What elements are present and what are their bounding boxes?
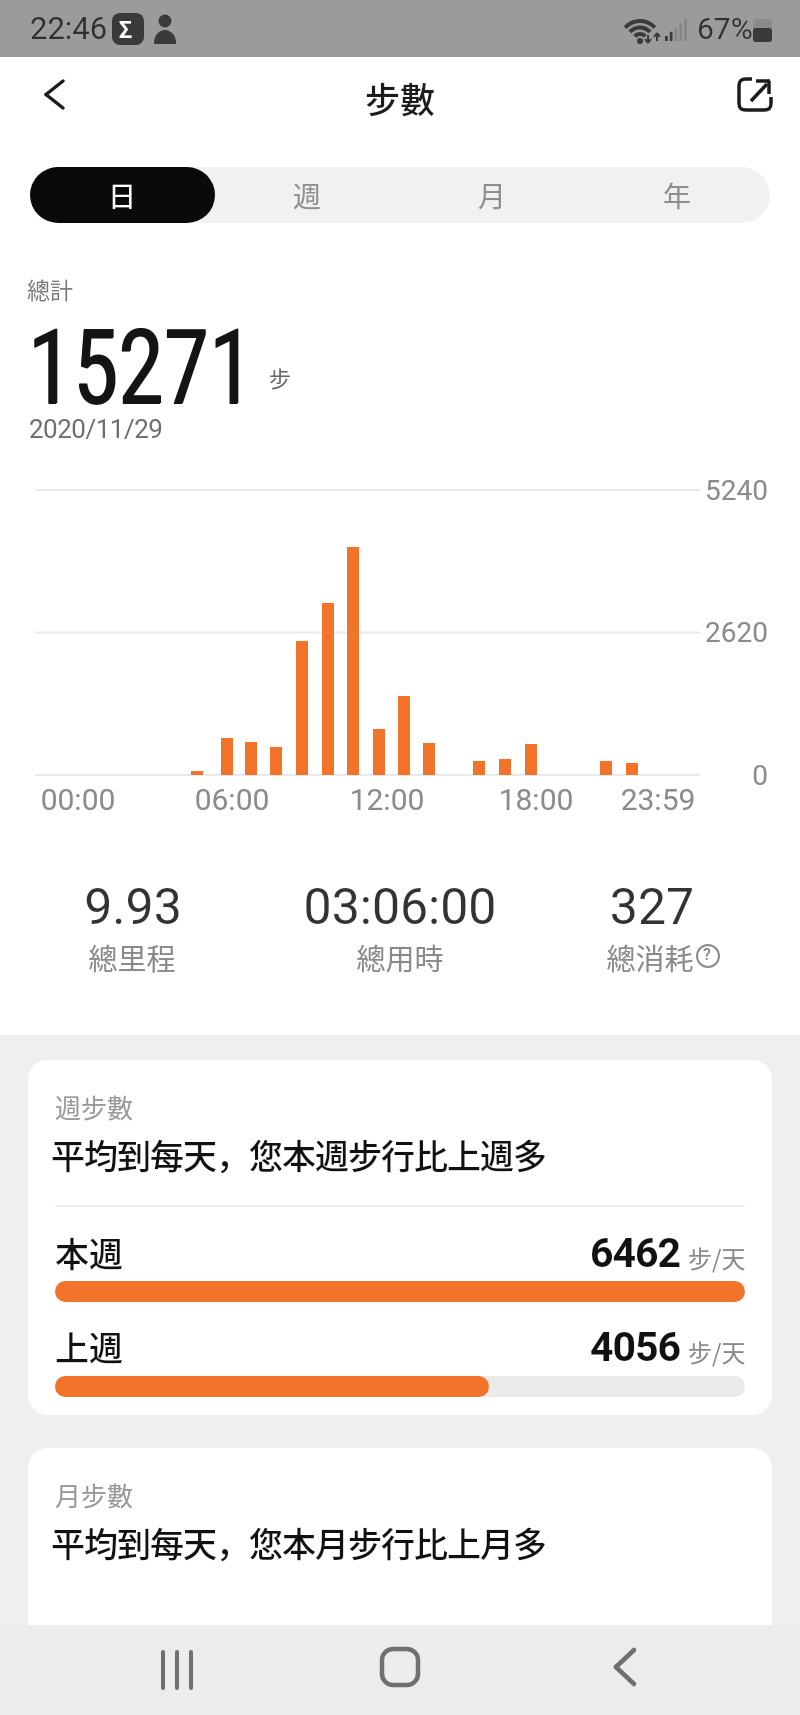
staticText: 週步數 (55, 1088, 134, 1126)
staticText: 年 (663, 175, 692, 216)
staticText: 本週 (55, 1228, 123, 1277)
staticText: 67% (697, 11, 753, 46)
button[interactable] (28, 70, 80, 122)
button[interactable] (28, 1448, 772, 1660)
staticText: 上週 (55, 1322, 123, 1371)
staticText: 步/天 (688, 1240, 746, 1275)
staticText: 4056 (422, 1323, 680, 1371)
staticText: 步數 (330, 72, 470, 123)
staticText: 5240 (690, 474, 768, 507)
button[interactable] (575, 1625, 675, 1715)
staticText: 22:46 (30, 10, 108, 46)
staticText: 03:06:00 (280, 878, 520, 937)
button[interactable]: ? (694, 942, 722, 970)
staticText: 總用時 (330, 936, 470, 978)
button[interactable]: 週 (215, 167, 400, 223)
staticText: 15271 (28, 307, 255, 429)
staticText: 6462 (422, 1229, 680, 1277)
staticText: 2020/11/29 (29, 414, 163, 444)
button[interactable]: 年 (585, 167, 770, 223)
staticText: 0 (690, 759, 768, 792)
button[interactable]: 日 (30, 167, 215, 223)
staticText: 23:59 (618, 782, 698, 817)
staticText: 15271 (27, 308, 254, 430)
staticText: 06:00 (192, 782, 272, 817)
button[interactable] (350, 1625, 450, 1715)
staticText: 週 (293, 175, 322, 216)
staticText: 總消耗 (580, 936, 720, 978)
staticText: 平均到每天，您本月步行比上月多 (51, 1518, 546, 1567)
staticText: 00:00 (38, 782, 118, 817)
staticText: 15271 (27, 307, 254, 429)
staticText: 平均到每天，您本週步行比上週多 (51, 1130, 546, 1179)
staticText: 總計 (27, 272, 73, 305)
button[interactable] (730, 70, 782, 122)
staticText: 327 (582, 878, 722, 937)
staticText: 月 (478, 175, 507, 216)
staticText: 月步數 (55, 1476, 134, 1514)
staticText: 總里程 (62, 936, 202, 978)
button[interactable]: 月 (400, 167, 585, 223)
staticText: ? (703, 945, 711, 964)
staticText: 日 (108, 175, 137, 216)
staticText: Σ (119, 17, 133, 44)
staticText: 步/天 (688, 1334, 746, 1369)
staticText: 12:00 (347, 782, 427, 817)
button[interactable] (28, 1060, 772, 1415)
staticText: 步 (269, 361, 292, 393)
staticText: 18:00 (496, 782, 576, 817)
staticText: 9.93 (63, 878, 203, 937)
staticText: 2620 (690, 616, 768, 649)
button[interactable] (130, 1625, 230, 1715)
